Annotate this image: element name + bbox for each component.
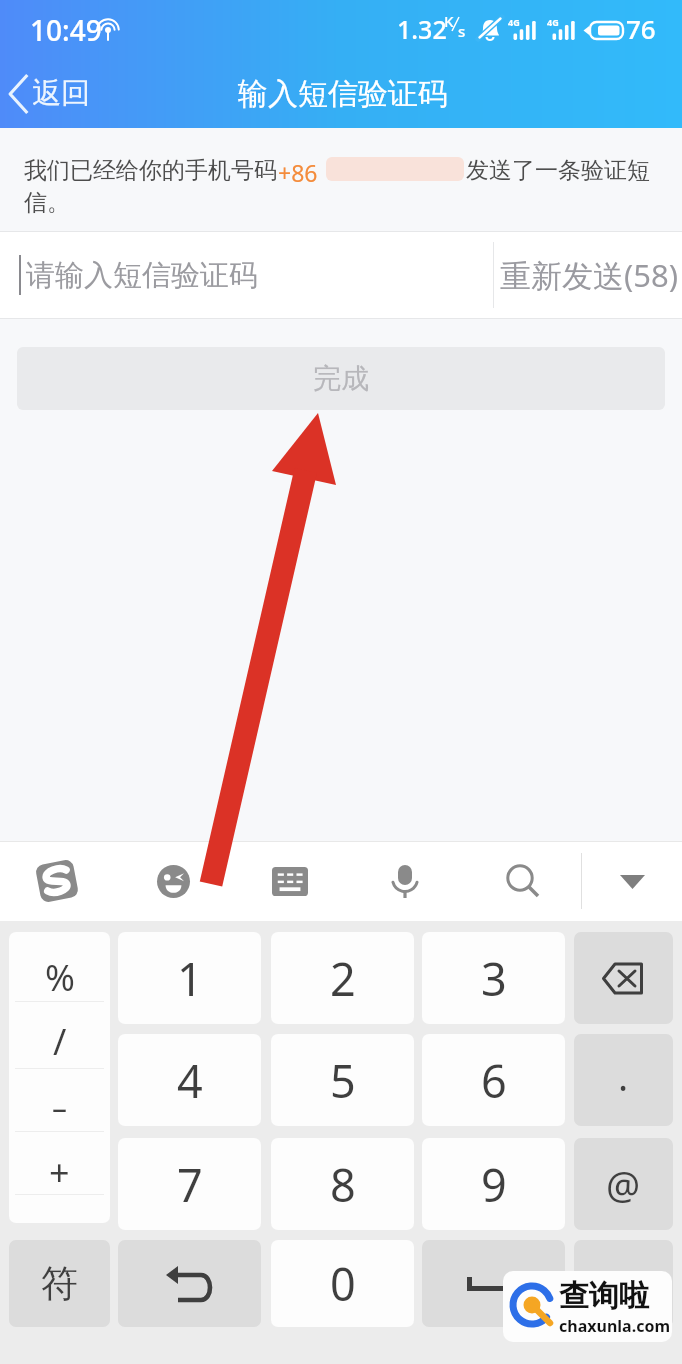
staticText: 符: [41, 1260, 78, 1307]
button[interactable]: 重新发送(58): [494, 232, 682, 318]
button[interactable]: –: [9, 1085, 110, 1130]
staticText: 10:49: [30, 11, 102, 49]
button[interactable]: Search: [483, 841, 563, 921]
button[interactable]: @: [574, 1138, 673, 1230]
button[interactable]: Enter: [574, 1240, 673, 1327]
staticText: 9: [481, 1154, 507, 1215]
button[interactable]: %: [9, 953, 110, 998]
staticText: 发送了一条验证短: [466, 156, 650, 185]
staticText: 7: [177, 1154, 203, 1215]
button[interactable]: /: [9, 1017, 110, 1062]
staticText: .: [618, 1050, 629, 1102]
staticText: %: [45, 953, 75, 998]
button[interactable]: Delete: [574, 932, 673, 1024]
staticText: 1: [177, 948, 203, 1009]
staticText: 0: [330, 1253, 356, 1314]
staticText: 2: [330, 948, 356, 1009]
button[interactable]: .: [574, 1034, 673, 1126]
button[interactable]: %: [9, 932, 110, 1223]
staticText: /: [53, 1017, 67, 1062]
staticText: @: [606, 1158, 641, 1210]
button[interactable]: 8: [271, 1138, 414, 1230]
staticText: 输入短信验证码: [238, 75, 448, 113]
staticText: K: [444, 11, 454, 31]
staticText: +: [49, 1148, 70, 1193]
button[interactable]: 3: [422, 932, 565, 1024]
staticText: 76: [626, 11, 656, 46]
staticText: 4: [177, 1050, 203, 1111]
button[interactable]: Sogou input method: [17, 841, 97, 921]
staticText: 5: [330, 1050, 356, 1111]
button[interactable]: 5: [271, 1034, 414, 1126]
staticText: 信。: [24, 188, 70, 217]
staticText: 查询啦: [559, 1277, 649, 1315]
staticText: 重新发送(58): [500, 254, 679, 296]
button[interactable]: 完成: [17, 347, 665, 410]
staticText: 6: [481, 1050, 507, 1111]
button[interactable]: Hide keyboard: [592, 841, 672, 921]
staticText: 请输入短信验证码: [26, 257, 258, 294]
staticText: –: [52, 1087, 67, 1128]
button[interactable]: 0: [271, 1240, 414, 1327]
button[interactable]: Space: [422, 1240, 565, 1327]
button[interactable]: 4: [118, 1034, 261, 1126]
staticText: 8: [330, 1154, 356, 1215]
button[interactable]: 符: [9, 1240, 110, 1327]
button[interactable]: +: [9, 1148, 110, 1193]
staticText: 1.32: [397, 12, 447, 46]
staticText: 完成: [313, 361, 369, 396]
staticText: chaxunla.com: [559, 1315, 670, 1337]
button[interactable]: Return: [118, 1240, 261, 1327]
staticText: 返回: [32, 75, 90, 112]
staticText: 4G: [508, 16, 520, 28]
button[interactable]: 请输入短信验证码: [0, 232, 493, 318]
button[interactable]: Emoji: [133, 841, 213, 921]
button[interactable]: Keyboard layout: [250, 841, 330, 921]
staticText: +86: [278, 157, 318, 188]
staticText: 3: [481, 948, 507, 1009]
button[interactable]: 返回: [0, 66, 108, 122]
staticText: 我们已经给你的手机号码: [24, 156, 277, 185]
button[interactable]: 6: [422, 1034, 565, 1126]
button[interactable]: 2: [271, 932, 414, 1024]
button[interactable]: 1: [118, 932, 261, 1024]
button[interactable]: 9: [422, 1138, 565, 1230]
button[interactable]: Voice input: [365, 841, 445, 921]
button[interactable]: 7: [118, 1138, 261, 1230]
staticText: 4G: [547, 16, 559, 28]
staticText: s: [458, 21, 466, 41]
